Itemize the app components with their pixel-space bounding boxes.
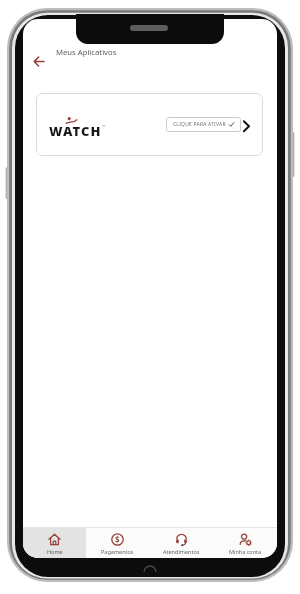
button[interactable]: Minha conta — [213, 528, 277, 558]
button[interactable] — [27, 49, 51, 73]
staticText: Home — [47, 548, 63, 555]
staticText: Minha conta — [229, 548, 262, 555]
staticText: Pagamentos — [101, 548, 134, 555]
staticText: ™ — [102, 124, 106, 129]
button[interactable]: Home — [23, 528, 86, 558]
button[interactable]: CLIQUE PARA ATIVAR — [166, 117, 241, 132]
staticText: WATCH — [49, 122, 102, 137]
staticText: Meus Aplicativos — [56, 47, 117, 57]
staticText: CLIQUE PARA ATIVAR — [173, 121, 226, 128]
button[interactable]: $ — [86, 528, 149, 558]
button[interactable]: Atendimentos — [149, 528, 213, 558]
staticText: $ — [115, 534, 120, 545]
staticText: Atendimentos — [163, 548, 200, 555]
button[interactable]: WATCH — [36, 93, 263, 156]
